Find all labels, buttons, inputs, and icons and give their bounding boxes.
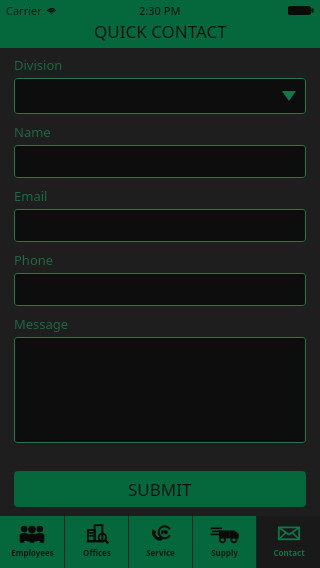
staticText: Offices bbox=[83, 547, 111, 558]
button[interactable]: Service bbox=[129, 516, 192, 568]
button[interactable]: Message input bbox=[14, 337, 306, 443]
staticText: 2:30 PM bbox=[139, 3, 181, 18]
button[interactable]: Supply bbox=[193, 516, 256, 568]
button[interactable]: Offices bbox=[65, 516, 128, 568]
staticText: Contact bbox=[273, 547, 305, 558]
button[interactable]: Contact bbox=[257, 516, 320, 568]
staticText: Division bbox=[14, 56, 63, 74]
button[interactable]: Phone input bbox=[14, 273, 306, 306]
staticText: Email bbox=[14, 187, 48, 205]
staticText: SUBMIT bbox=[128, 478, 192, 501]
staticText: Name bbox=[14, 123, 51, 141]
staticText: Service bbox=[146, 547, 175, 558]
button[interactable]: Division selector bbox=[14, 78, 306, 114]
button[interactable]: Employees bbox=[0, 516, 64, 568]
staticText: Employees bbox=[11, 547, 54, 558]
staticText: Phone bbox=[14, 251, 54, 269]
staticText: QUICK CONTACT bbox=[94, 20, 227, 43]
button[interactable]: SUBMIT bbox=[14, 471, 306, 507]
button[interactable]: Name input bbox=[14, 145, 306, 178]
staticText: Carrier bbox=[6, 3, 42, 18]
staticText: Supply bbox=[211, 547, 238, 558]
button[interactable]: Email input bbox=[14, 209, 306, 242]
staticText: Message bbox=[14, 315, 69, 333]
